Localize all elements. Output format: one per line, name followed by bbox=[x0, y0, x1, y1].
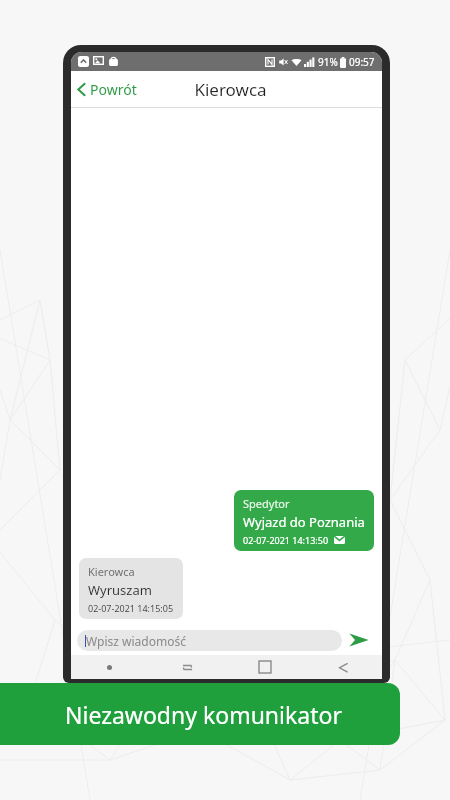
button[interactable]: Send message bbox=[342, 626, 376, 654]
button[interactable]: Powrót bbox=[71, 76, 145, 103]
staticText: Wyruszam bbox=[88, 581, 152, 599]
staticText: Niezawodny komunikator bbox=[65, 699, 342, 730]
button[interactable]: Niezawodny komunikator bbox=[0, 683, 400, 745]
button[interactable]: Wpisz wiadomość bbox=[77, 630, 342, 651]
button[interactable]: Home bbox=[226, 655, 304, 679]
button[interactable]: Back bbox=[304, 655, 382, 679]
staticText: Powrót bbox=[90, 80, 137, 99]
staticText: 02-07-2021 14:13:50 bbox=[243, 534, 329, 546]
staticText: Wyjazd do Poznania bbox=[243, 513, 365, 531]
button[interactable]: Kierowca bbox=[79, 558, 183, 619]
staticText: Kierowca bbox=[88, 564, 135, 579]
button[interactable]: Recent apps bbox=[148, 655, 226, 679]
staticText: 02-07-2021 14:15:05 bbox=[88, 602, 174, 614]
staticText: Wpisz wiadomość bbox=[86, 633, 186, 649]
button[interactable]: Assistant bbox=[71, 655, 148, 679]
staticText: 09:57 bbox=[349, 55, 375, 69]
staticText: Spedytor bbox=[243, 496, 290, 511]
staticText: 91% bbox=[318, 55, 338, 69]
staticText: Kierowca bbox=[194, 78, 267, 101]
button[interactable]: Spedytor bbox=[234, 490, 374, 551]
